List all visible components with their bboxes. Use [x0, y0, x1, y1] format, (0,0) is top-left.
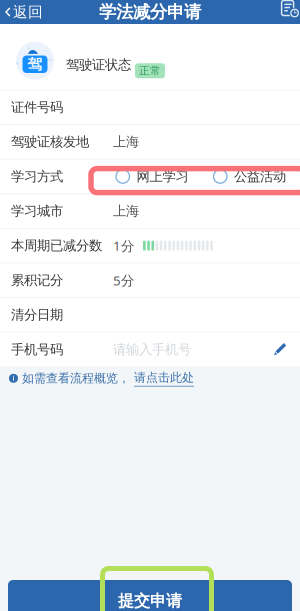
staticText: 提交申请	[118, 591, 182, 611]
staticText: 清分日期	[11, 307, 63, 323]
button[interactable]: 公益活动	[205, 163, 289, 189]
staticText: 累积记分	[11, 272, 63, 288]
staticText: 网上学习	[136, 168, 188, 185]
staticText: 学习城市	[11, 203, 63, 219]
button[interactable]: 办理记录	[281, 0, 300, 24]
staticText: 本周期已减分数	[11, 237, 102, 254]
staticText: 正常	[139, 64, 161, 77]
staticText: 请输入手机号	[113, 341, 191, 358]
staticText: 驾驶证状态	[66, 57, 131, 73]
staticText: 驾	[27, 55, 42, 73]
staticText: 返回	[13, 3, 43, 21]
staticText: 上海	[113, 134, 139, 150]
staticText: 驾驶证核发地	[11, 134, 89, 150]
staticText: 上海	[113, 203, 139, 219]
button[interactable]: 编辑手机号码	[271, 333, 289, 366]
button[interactable]: 提交申请	[8, 580, 292, 611]
staticText: 学习方式	[11, 168, 63, 185]
staticText: 证件号码	[11, 99, 63, 115]
staticText: 请点击此处	[134, 370, 194, 385]
staticText: 手机号码	[11, 341, 63, 358]
staticText: 学法减分申请	[99, 1, 201, 23]
button[interactable]: 请点击此处	[134, 370, 194, 386]
staticText: 5分	[113, 271, 134, 289]
button[interactable]: 返回	[0, 0, 49, 24]
staticText: 1分	[113, 237, 134, 254]
button[interactable]: 网上学习	[113, 163, 196, 189]
staticText: 公益活动	[234, 168, 286, 185]
staticText: 如需查看流程概览，	[22, 371, 130, 386]
